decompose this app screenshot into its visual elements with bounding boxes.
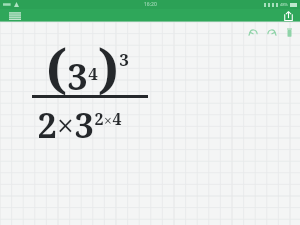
staticText: 4 <box>112 108 122 130</box>
staticText: 2 <box>37 102 57 148</box>
button[interactable]: Redo <box>264 25 278 39</box>
staticText: 16:20 <box>144 1 157 8</box>
staticText: × <box>57 105 74 146</box>
staticText: ( <box>46 32 67 103</box>
button[interactable]: Open navigation menu <box>6 9 24 22</box>
button[interactable]: Undo <box>246 25 260 39</box>
staticText: 2 <box>94 108 104 130</box>
staticText: × <box>104 111 112 130</box>
staticText: ) <box>98 32 119 103</box>
button[interactable]: Share <box>280 9 296 22</box>
staticText: 3 <box>119 48 129 71</box>
staticText: 48% <box>280 2 288 7</box>
staticText: 3 <box>67 52 88 101</box>
staticText: 4 <box>88 62 98 85</box>
button[interactable]: Clear all <box>282 25 296 39</box>
staticText: 3 <box>74 102 94 148</box>
